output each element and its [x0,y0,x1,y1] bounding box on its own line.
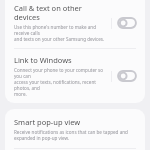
button[interactable]: Call & text on other devices [109,13,139,33]
staticText: Smart pop-up view [14,117,81,127]
button[interactable]: Smart pop-up view [5,109,145,148]
button[interactable]: Call & text on other devices [5,0,145,48]
button[interactable]: Link to Windows [109,66,139,86]
staticText: Link to Windows [14,55,72,65]
staticText: Receive notifications as icons that can … [14,129,128,141]
staticText: Call & text on other devices [14,3,107,22]
staticText: Connect your phone to your computer so y… [14,67,107,97]
staticText: Use this phone's number to make and rece… [14,24,107,42]
button[interactable]: Link to Windows [5,49,145,103]
